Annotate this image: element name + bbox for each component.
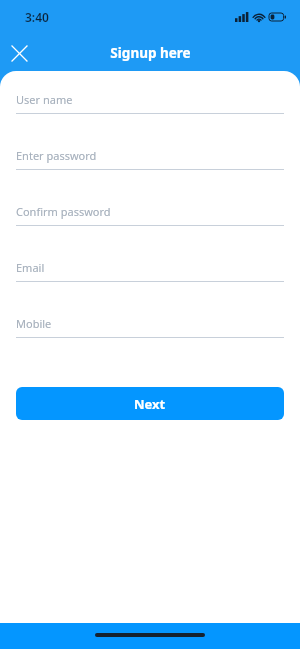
button[interactable]: Next [16,387,284,420]
button[interactable]: User name [16,86,284,142]
staticText: User name [16,92,73,107]
staticText: Mobile [16,316,52,331]
button[interactable]: Confirm password [16,198,284,254]
staticText: Next [134,395,166,413]
button[interactable]: Enter password [16,142,284,198]
button[interactable]: Email [16,254,284,310]
staticText: 3:40 [25,9,49,25]
staticText: Enter password [16,148,97,163]
staticText: Email [16,260,45,275]
staticText: Signup here [110,44,191,62]
button[interactable]: Mobile [16,310,284,366]
staticText: Confirm password [16,204,111,219]
button[interactable]: Close [7,41,31,65]
